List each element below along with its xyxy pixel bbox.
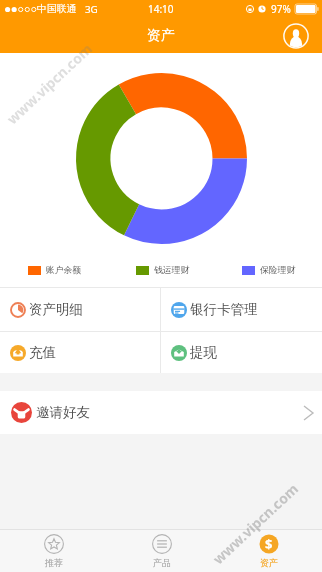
button[interactable]: Profile [283, 23, 309, 49]
staticText: 中国联通 [37, 3, 77, 15]
button[interactable]: 推荐 [0, 530, 108, 572]
button[interactable]: 充值 [0, 332, 160, 373]
staticText: 银行卡管理 [190, 301, 258, 318]
staticText: 账户余额 [46, 265, 82, 276]
button[interactable]: $ [215, 530, 322, 572]
button[interactable]: 资产明细 [0, 288, 160, 331]
staticText: 邀请好友 [36, 404, 90, 421]
staticText: 资产明细 [29, 301, 83, 318]
staticText: 97% [271, 2, 291, 16]
button[interactable]: 邀请好友 [0, 391, 322, 434]
staticText: 3G [85, 3, 98, 16]
staticText: 资产 [260, 557, 278, 568]
staticText: 产品 [153, 557, 171, 568]
staticText: $ [265, 535, 273, 553]
staticText: 资产 [147, 27, 175, 45]
staticText: 推荐 [45, 557, 63, 568]
staticText: 钱运理财 [154, 265, 190, 276]
staticText: www.vipcn.com [2, 39, 96, 128]
staticText: 保险理财 [260, 265, 296, 276]
button[interactable]: 银行卡管理 [161, 288, 322, 331]
staticText: 14:10 [148, 2, 174, 16]
button[interactable]: 提现 [161, 332, 322, 373]
button[interactable]: 产品 [108, 530, 215, 572]
staticText: 充值 [29, 344, 56, 361]
staticText: www.vipcn.com [208, 479, 302, 568]
staticText: 提现 [190, 344, 217, 361]
